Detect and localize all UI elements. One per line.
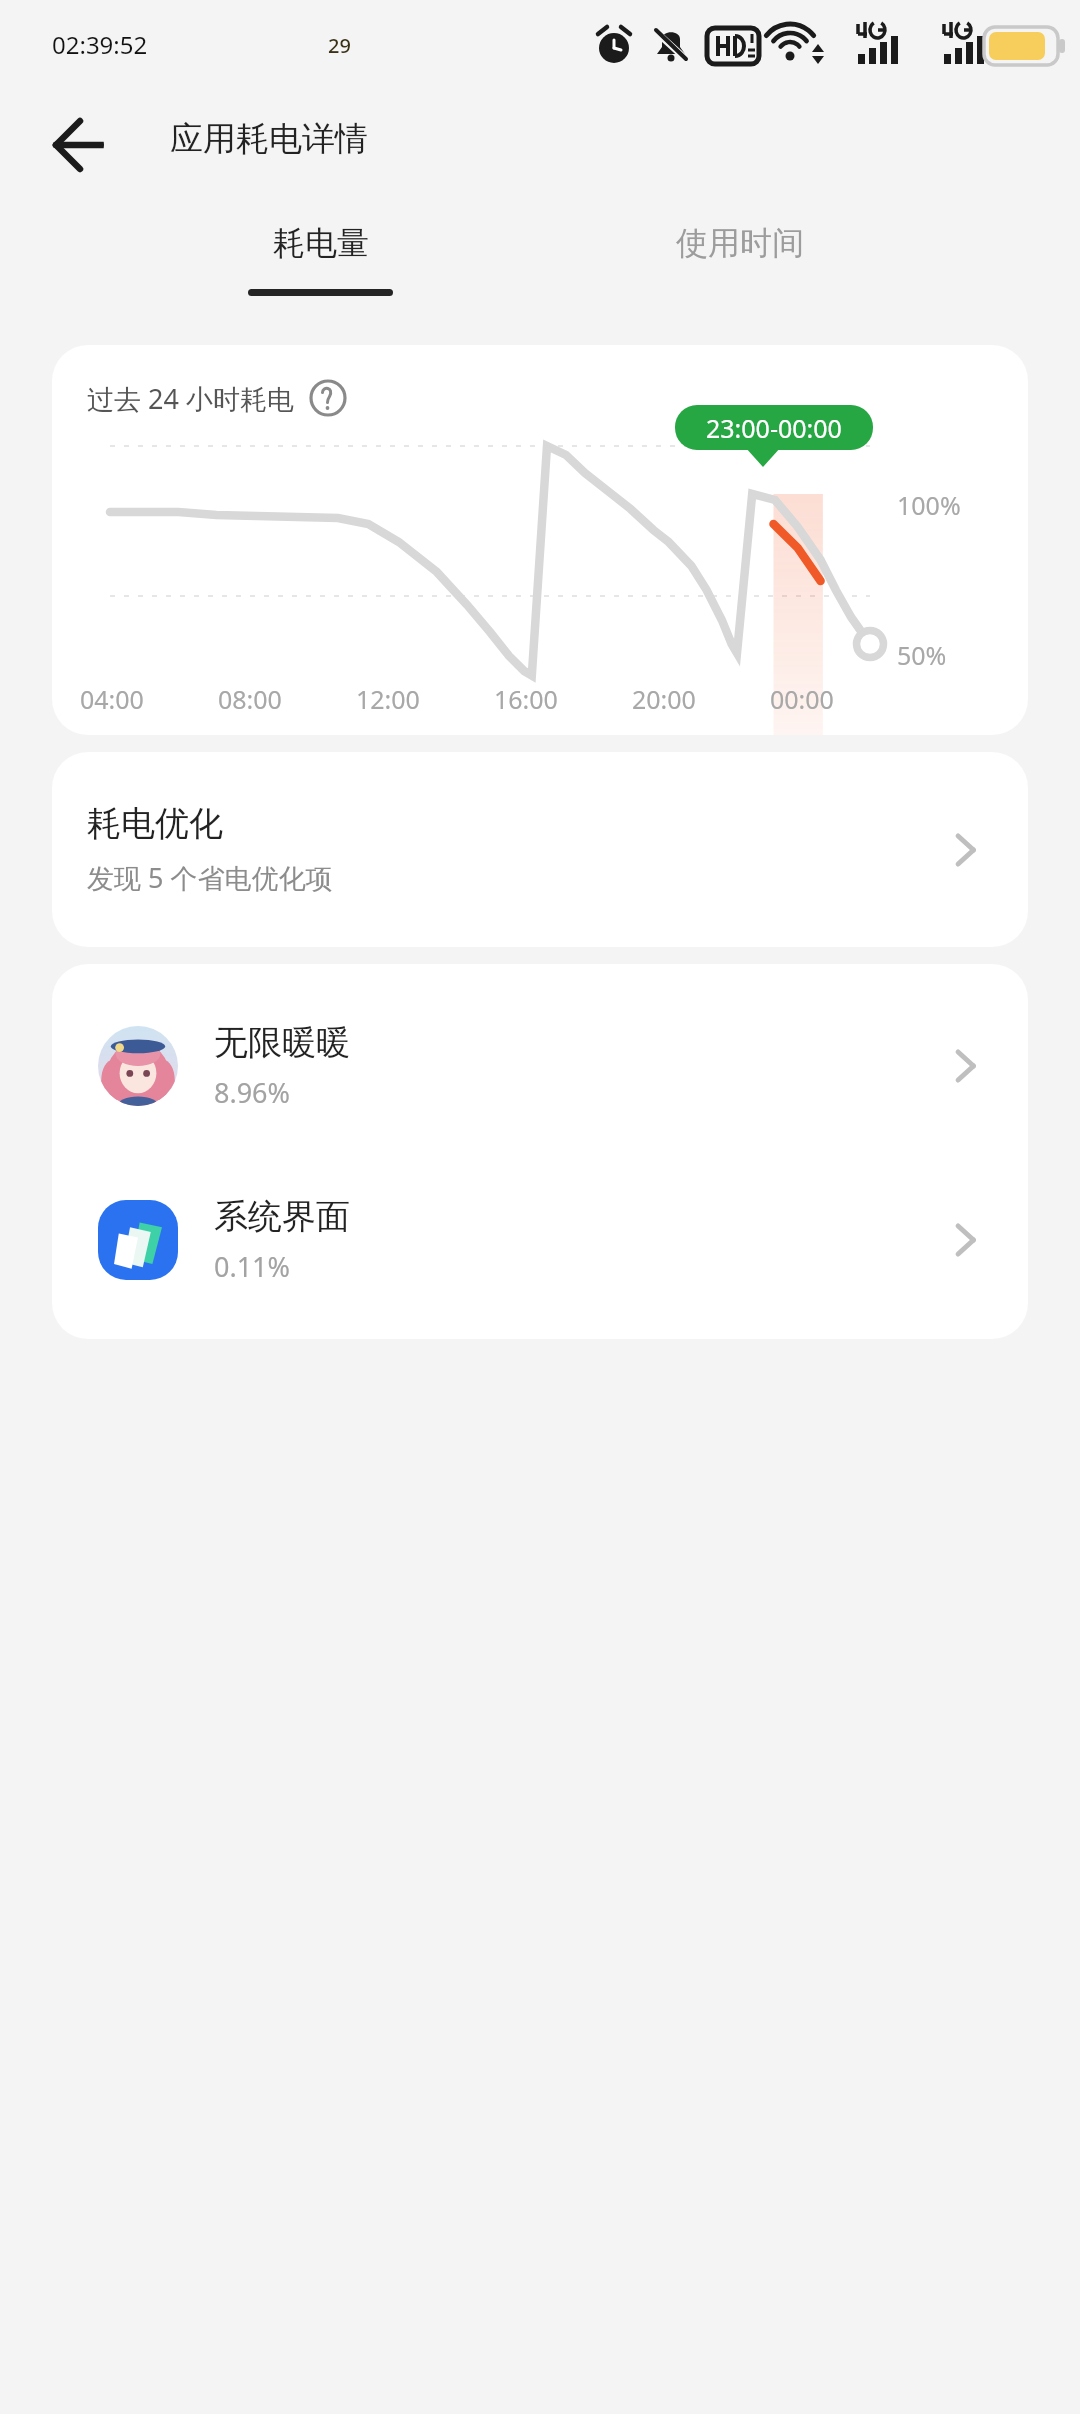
staticText: 发现 5 个省电优化项 <box>87 859 333 896</box>
staticText: 29 <box>328 32 351 59</box>
button[interactable]: 系统界面 <box>52 1160 1028 1320</box>
staticText: 00:00 <box>770 682 834 716</box>
staticText: 23:00-00:00 <box>706 411 842 445</box>
staticText: 0.11% <box>214 1248 291 1285</box>
staticText: 100% <box>897 488 961 522</box>
staticText: 04:00 <box>80 682 144 716</box>
button[interactable]: Help <box>308 378 348 418</box>
staticText: 无限暖暖 <box>214 1021 350 1064</box>
staticText: 20:00 <box>632 682 696 716</box>
staticText: 耗电优化 <box>87 802 223 845</box>
button[interactable]: 使用时间 <box>610 203 870 323</box>
button[interactable]: 耗电量 <box>190 203 450 323</box>
staticText: 使用时间 <box>676 223 804 263</box>
button[interactable]: Back <box>40 113 104 177</box>
staticText: 过去 24 小时耗电 <box>87 380 294 417</box>
staticText: 16:00 <box>494 682 558 716</box>
button[interactable]: 无限暖暖 <box>52 986 1028 1146</box>
staticText: 02:39:52 <box>52 28 148 61</box>
staticText: 应用耗电详情 <box>170 118 368 160</box>
staticText: 50% <box>897 638 947 672</box>
staticText: 耗电量 <box>273 223 369 263</box>
button[interactable]: 耗电优化 <box>52 752 1028 947</box>
staticText: 12:00 <box>356 682 420 716</box>
staticText: 系统界面 <box>214 1195 350 1238</box>
staticText: 8.96% <box>214 1074 291 1111</box>
staticText: 08:00 <box>218 682 282 716</box>
